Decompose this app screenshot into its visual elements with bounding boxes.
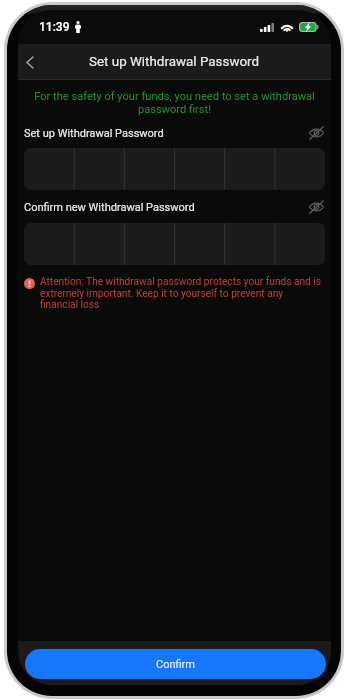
- button[interactable]: Show password: [307, 198, 325, 216]
- button[interactable]: Show password: [307, 124, 325, 142]
- staticText: Set up Withdrawal Password: [24, 127, 164, 140]
- button[interactable]: Confirm: [25, 649, 326, 679]
- staticText: For the safety of your funds, you need t…: [32, 90, 317, 116]
- staticText: 11:39: [39, 20, 70, 34]
- staticText: Set up Withdrawal Password: [89, 54, 260, 70]
- staticText: Confirm new Withdrawal Password: [24, 201, 195, 214]
- button[interactable]: Back: [18, 44, 41, 80]
- staticText: Confirm: [156, 658, 195, 671]
- staticText: Attention: The withdrawal password prote…: [40, 276, 323, 310]
